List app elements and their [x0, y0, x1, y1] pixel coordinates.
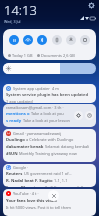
staticText: Take a look at your lesson [22, 118, 70, 123]
staticText: Monthly Training giveaway now [18, 151, 77, 156]
staticText: mentions o [6, 111, 30, 117]
button[interactable]: YouTube · 4 t · [3, 189, 96, 216]
staticText: ramaikosam@gmail.com · 3 th · [6, 105, 64, 110]
staticText: US government raid 1 of... [23, 171, 72, 176]
button[interactable]: Notification settings [74, 111, 83, 120]
button[interactable]: Do not disturb [9, 35, 19, 45]
staticText: Your fans love this video [6, 198, 57, 204]
staticText: 1 app updated [6, 99, 33, 103]
button[interactable]: Wi-Fi [23, 35, 33, 45]
button[interactable]: Settings [88, 2, 95, 9]
button[interactable]: Gmail · yamanamadewanij [3, 129, 96, 162]
staticText: : 0 - 0 Gyeongnam full score [43, 185, 94, 187]
button[interactable]: Bluetooth [37, 35, 47, 45]
button[interactable]: Flashlight [52, 35, 62, 45]
staticText: YouTube · 4 t · [13, 191, 39, 196]
staticText: Reuters [6, 171, 23, 177]
staticText: Duolingo [6, 137, 25, 143]
staticText: R. Nadal beat F. Sugito [6, 178, 53, 184]
staticText: dakumater kenak [6, 144, 44, 150]
staticText: It hit 5000 views. Post it to tell them [6, 205, 71, 210]
staticText: Wed, 3 Jul [4, 19, 21, 24]
staticText: 14:13 [4, 1, 37, 19]
staticText: 1-1, 1-1 [53, 178, 68, 183]
staticText: 4 m [52, 86, 59, 91]
staticText: Documents 2,6 GB [41, 53, 75, 58]
button[interactable]: Screen recorder [80, 35, 90, 45]
staticText: System service plugin has been updated [6, 92, 89, 98]
staticText: #SUN [6, 151, 18, 157]
staticText: Selamat datang kembali [44, 144, 90, 149]
staticText: System app updater [13, 86, 50, 91]
button[interactable]: Clear all notifications [48, 190, 59, 201]
staticText: Today 1 GB [12, 53, 33, 58]
button[interactable]: Snooze [85, 111, 94, 120]
button[interactable]: ramaikosam@gmail.com · 3 th · [3, 104, 96, 127]
staticText: Suwon Bluewings [6, 185, 43, 187]
button[interactable]: Brightness [3, 63, 96, 74]
button[interactable]: System app updater [3, 84, 96, 103]
staticText: s ready [6, 118, 22, 124]
staticText: Gmail · yamanamadewanij [13, 131, 62, 136]
staticText: Google · [13, 165, 29, 170]
staticText: Take a look at you [30, 111, 64, 116]
button[interactable]: Profile [66, 35, 76, 45]
button[interactable]: Google · [3, 164, 96, 187]
staticText: a Celebrate with Duolingo [25, 137, 74, 142]
